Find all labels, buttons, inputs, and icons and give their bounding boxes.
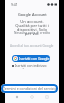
staticText: Nessuna carta di credito [14, 31, 51, 35]
staticText: Iscriviti con indirizzo email [15, 63, 50, 69]
button[interactable]: Iscriviti con indirizzo email [12, 63, 50, 69]
staticText: Iscriviti con Google [19, 56, 50, 61]
staticText: Accedi al tuo account Google [10, 44, 54, 48]
button[interactable]: Iscriviti con Google [12, 55, 50, 62]
staticText: Termini e condizioni del servizio [3, 86, 57, 91]
button[interactable]: Back [14, 94, 20, 100]
staticText: Google Account [18, 12, 47, 17]
button[interactable]: Termini e condizioni del servizio [1, 84, 58, 93]
button[interactable]: Recents [44, 94, 50, 100]
button[interactable]: Home [29, 94, 35, 100]
staticText: Un account. Qualità per tutti i disposit… [13, 19, 51, 37]
other: Status icons [47, 3, 55, 6]
staticText: 9:41 [11, 2, 18, 7]
